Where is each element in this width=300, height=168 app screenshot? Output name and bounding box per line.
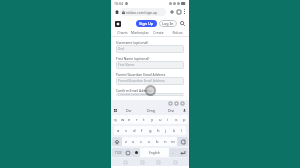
button[interactable]: Parent/Guardian Email Address xyxy=(116,77,184,85)
button[interactable]: Emoji xyxy=(124,148,132,157)
button[interactable]: Sign Up xyxy=(136,20,157,27)
button[interactable]: e xyxy=(126,115,133,124)
button[interactable]: Symbols xyxy=(112,148,124,157)
staticText: k xyxy=(173,128,176,134)
button[interactable]: u xyxy=(156,115,164,124)
staticText: s xyxy=(125,128,128,134)
button[interactable]: q xyxy=(112,115,119,124)
staticText: ?123 xyxy=(115,151,122,155)
staticText: f xyxy=(141,128,143,134)
staticText: Log In xyxy=(162,21,174,26)
button[interactable]: Divi xyxy=(161,106,182,114)
button[interactable]: English xyxy=(140,148,169,157)
staticText: j xyxy=(165,128,167,134)
button[interactable]: Charts xyxy=(113,29,131,36)
button[interactable]: s xyxy=(122,126,130,135)
staticText: d xyxy=(133,128,136,134)
button[interactable]: o xyxy=(172,115,180,124)
staticText: t xyxy=(143,117,145,123)
button[interactable]: Home xyxy=(139,159,145,165)
button[interactable]: l xyxy=(178,126,186,135)
staticText: Confirm Email Address xyxy=(118,93,153,96)
button[interactable]: Shift xyxy=(112,137,122,146)
button[interactable]: b xyxy=(153,137,161,146)
button[interactable]: Home xyxy=(113,8,120,15)
button[interactable]: Recents xyxy=(155,159,161,165)
staticText: 10:04 xyxy=(114,1,123,6)
button[interactable]: Create xyxy=(149,29,168,36)
staticText: . xyxy=(172,150,174,155)
staticText: Confirm Email Address xyxy=(116,88,152,92)
staticText: e xyxy=(128,117,131,123)
button[interactable]: k xyxy=(170,126,178,135)
staticText: z xyxy=(125,139,127,145)
button[interactable]: z xyxy=(122,137,129,146)
button[interactable]: Back xyxy=(122,159,128,165)
button[interactable]: Search xyxy=(179,20,186,27)
staticText: a xyxy=(117,128,120,134)
staticText: roblox.com/sign-up xyxy=(126,10,158,15)
button[interactable]: h xyxy=(154,126,162,135)
button[interactable]: Menu xyxy=(172,159,178,165)
button[interactable]: Tool 0 xyxy=(168,101,173,106)
button[interactable]: Robux xyxy=(168,29,187,36)
staticText: h xyxy=(157,128,160,134)
button[interactable]: Marketplace xyxy=(131,29,149,36)
staticText: Create xyxy=(153,30,164,35)
button[interactable]: roblox.com/sign-up xyxy=(120,8,166,16)
staticText: Dvr xyxy=(126,108,132,113)
button[interactable]: p xyxy=(180,115,188,124)
staticText: w xyxy=(121,117,125,123)
staticText: x xyxy=(132,139,135,145)
button[interactable]: Comma xyxy=(132,148,140,157)
button[interactable]: Tool 2 xyxy=(180,101,185,106)
staticText: Dvd xyxy=(118,47,124,51)
button[interactable]: n xyxy=(161,137,169,146)
staticText: c xyxy=(140,139,143,145)
button[interactable]: Voice input xyxy=(182,108,187,113)
button[interactable]: Tool 1 xyxy=(174,101,179,106)
button[interactable]: New tab xyxy=(168,8,175,15)
button[interactable]: Enter xyxy=(177,148,188,157)
staticText: v xyxy=(148,139,151,145)
button[interactable]: j xyxy=(162,126,170,135)
button[interactable]: Keyboard menu xyxy=(113,108,118,113)
staticText: Divi xyxy=(168,108,175,113)
staticText: First Name (optional) xyxy=(116,56,150,60)
staticText: g xyxy=(149,128,152,134)
button[interactable]: Log In xyxy=(159,20,177,27)
button[interactable]: Period xyxy=(169,148,177,157)
staticText: i xyxy=(167,117,169,123)
button[interactable]: Dmg xyxy=(140,106,161,114)
button[interactable]: f xyxy=(138,126,146,135)
staticText: u xyxy=(159,117,162,123)
button[interactable]: y xyxy=(148,115,156,124)
button[interactable]: a xyxy=(114,126,122,135)
button[interactable]: Dvd xyxy=(116,45,184,53)
button[interactable]: Dvr xyxy=(118,106,140,114)
staticText: Sign Up xyxy=(139,21,154,26)
button[interactable]: More options xyxy=(182,9,187,14)
button[interactable]: w xyxy=(119,115,126,124)
staticText: b xyxy=(156,139,159,145)
staticText: Dmg xyxy=(147,108,155,113)
button[interactable]: r xyxy=(133,115,140,124)
button[interactable]: Confirm Email Address xyxy=(116,93,184,96)
button[interactable]: Roblox home xyxy=(114,20,121,27)
button[interactable]: v xyxy=(145,137,153,146)
staticText: First Name xyxy=(118,63,135,67)
button[interactable]: m xyxy=(169,137,177,146)
button[interactable]: g xyxy=(146,126,154,135)
button[interactable]: x xyxy=(129,137,137,146)
button[interactable]: d xyxy=(130,126,138,135)
button[interactable]: i xyxy=(164,115,172,124)
staticText: m xyxy=(171,139,175,145)
staticText: Marketplace xyxy=(131,30,149,35)
staticText: English xyxy=(149,151,160,155)
button[interactable]: Tabs xyxy=(175,8,182,15)
button[interactable]: t xyxy=(140,115,148,124)
button[interactable]: First Name xyxy=(116,61,184,69)
staticText: Username (optional) xyxy=(116,40,149,44)
button[interactable]: c xyxy=(137,137,145,146)
button[interactable]: Backspace xyxy=(177,137,188,146)
